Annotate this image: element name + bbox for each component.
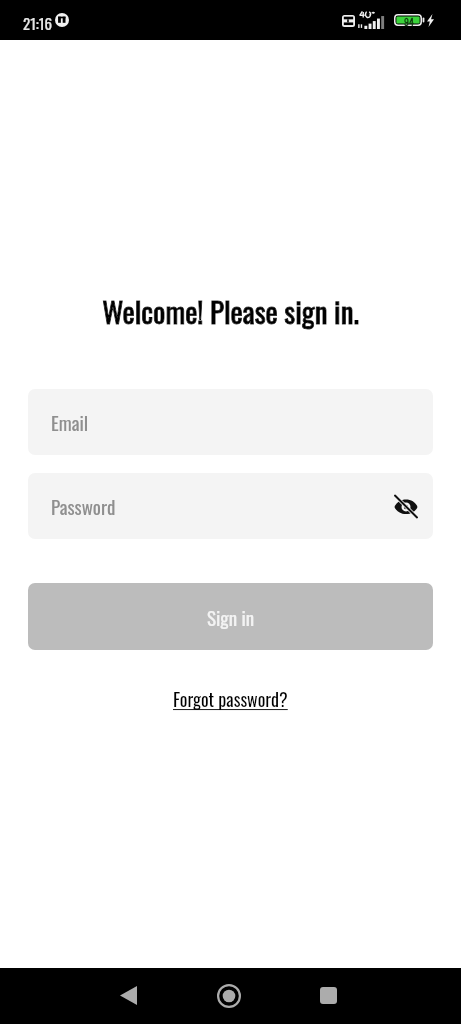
staticText: Sign in (207, 603, 255, 631)
button[interactable]: Back (106, 973, 151, 1018)
button[interactable]: Email (28, 389, 433, 455)
button[interactable]: Password (28, 473, 433, 539)
staticText: Welcome! Please sign in. (0, 289, 461, 332)
button[interactable]: Sign in (28, 583, 433, 650)
button[interactable]: Show password (389, 489, 423, 523)
button[interactable]: Forgot password? (167, 683, 294, 716)
staticText: Welcome! Please sign in. (0, 289, 461, 332)
staticText: Forgot password? (173, 686, 288, 713)
staticText: 94 (404, 14, 414, 29)
staticText: Email (51, 408, 89, 436)
staticText: 21:16 (23, 12, 53, 34)
staticText: Password (51, 492, 116, 520)
button[interactable]: Recents (306, 973, 351, 1018)
button[interactable]: Home (206, 973, 251, 1018)
